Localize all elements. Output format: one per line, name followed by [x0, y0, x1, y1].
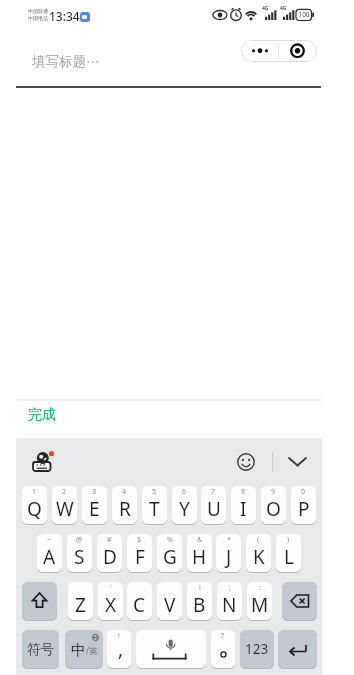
- staticText: E: [89, 496, 100, 522]
- button[interactable]: 2: [52, 486, 77, 524]
- staticText: 4G: [262, 5, 269, 12]
- staticText: 3: [92, 487, 97, 497]
- staticText: *: [227, 535, 231, 545]
- staticText: J: [226, 544, 232, 570]
- staticText: 4G: [280, 5, 287, 12]
- button[interactable]: [282, 582, 317, 620]
- button[interactable]: %: [157, 534, 182, 572]
- staticText: :: [259, 583, 261, 593]
- staticText: T: [149, 496, 160, 522]
- button[interactable]: [26, 444, 60, 476]
- button[interactable]: [283, 450, 311, 475]
- button[interactable]: 7: [201, 486, 226, 524]
- staticText: 9: [271, 487, 276, 497]
- staticText: 0: [301, 487, 306, 497]
- staticText: 2: [62, 487, 67, 497]
- button[interactable]: [136, 630, 206, 668]
- staticText: G: [163, 544, 177, 570]
- button[interactable]: 完成: [24, 402, 60, 428]
- staticText: !: [199, 583, 201, 593]
- staticText: (: [257, 535, 260, 545]
- button[interactable]: *: [216, 534, 241, 572]
- button[interactable]: 8: [231, 486, 256, 524]
- button[interactable]: #: [97, 534, 122, 572]
- button[interactable]: [234, 450, 259, 475]
- staticText: W: [56, 496, 74, 522]
- button[interactable]: [278, 630, 317, 668]
- staticText: ): [287, 535, 290, 545]
- button[interactable]: 4: [112, 486, 137, 524]
- button[interactable]: :: [247, 582, 272, 620]
- button[interactable]: 123: [240, 630, 274, 668]
- staticText: 中: [71, 641, 86, 660]
- staticText: 123: [245, 640, 269, 658]
- button[interactable]: ?: [211, 630, 235, 668]
- staticText: @: [76, 535, 83, 545]
- button[interactable]: $: [127, 534, 152, 572]
- staticText: 1: [32, 487, 37, 497]
- staticText: 8: [241, 487, 246, 497]
- button[interactable]: 中: [65, 630, 103, 668]
- staticText: M: [251, 592, 269, 618]
- button[interactable]: @: [67, 534, 92, 572]
- staticText: 填写标题⋯: [32, 53, 100, 70]
- staticText: ?: [221, 631, 225, 641]
- staticText: N: [222, 592, 237, 618]
- button[interactable]: [241, 40, 278, 62]
- staticText: V: [164, 592, 176, 618]
- button[interactable]: &: [187, 534, 212, 572]
- staticText: F: [135, 544, 145, 570]
- button[interactable]: [279, 40, 317, 62]
- button[interactable]: 0: [291, 486, 316, 524]
- button[interactable]: 9: [261, 486, 286, 524]
- staticText: 5: [152, 487, 157, 497]
- button[interactable]: !: [187, 582, 212, 620]
- button[interactable]: !: [107, 630, 131, 668]
- staticText: 符号: [27, 641, 54, 658]
- staticText: O: [266, 496, 281, 522]
- staticText: 100: [297, 10, 311, 19]
- staticText: H: [192, 544, 207, 570]
- staticText: Z: [75, 592, 86, 618]
- staticText: ;: [229, 583, 231, 593]
- staticText: %: [167, 535, 173, 545]
- staticText: /英: [86, 645, 98, 657]
- button[interactable]: (: [246, 534, 271, 572]
- button[interactable]: ~: [37, 534, 62, 572]
- button[interactable]: ): [276, 534, 301, 572]
- button[interactable]: 符号: [22, 630, 59, 668]
- staticText: P: [298, 496, 310, 522]
- button[interactable]: 6: [172, 486, 197, 524]
- staticText: I: [240, 496, 247, 522]
- staticText: 完成: [28, 406, 56, 424]
- button[interactable]: 1: [22, 486, 47, 524]
- staticText: &: [197, 535, 203, 545]
- button[interactable]: 3: [82, 486, 107, 524]
- staticText: R: [119, 496, 131, 522]
- staticText: 4: [122, 487, 127, 497]
- button[interactable]: ': [98, 582, 123, 620]
- button[interactable]: C: [127, 582, 152, 620]
- staticText: Q: [27, 496, 42, 522]
- staticText: !: [118, 631, 120, 641]
- staticText: D: [103, 544, 117, 570]
- staticText: $: [137, 535, 142, 545]
- button[interactable]: Z: [68, 582, 93, 620]
- button[interactable]: ;: [217, 582, 242, 620]
- button[interactable]: [22, 582, 57, 620]
- staticText: B: [193, 592, 206, 618]
- staticText: 6: [182, 487, 187, 497]
- staticText: K: [253, 544, 265, 570]
- button[interactable]: 5: [142, 486, 167, 524]
- staticText: S: [74, 544, 85, 570]
- staticText: U: [207, 496, 221, 522]
- button[interactable]: V: [157, 582, 182, 620]
- staticText: L: [284, 544, 294, 570]
- staticText: ,: [118, 636, 124, 662]
- staticText: 7: [211, 487, 216, 497]
- staticText: X: [105, 592, 117, 618]
- staticText: Y: [179, 496, 190, 522]
